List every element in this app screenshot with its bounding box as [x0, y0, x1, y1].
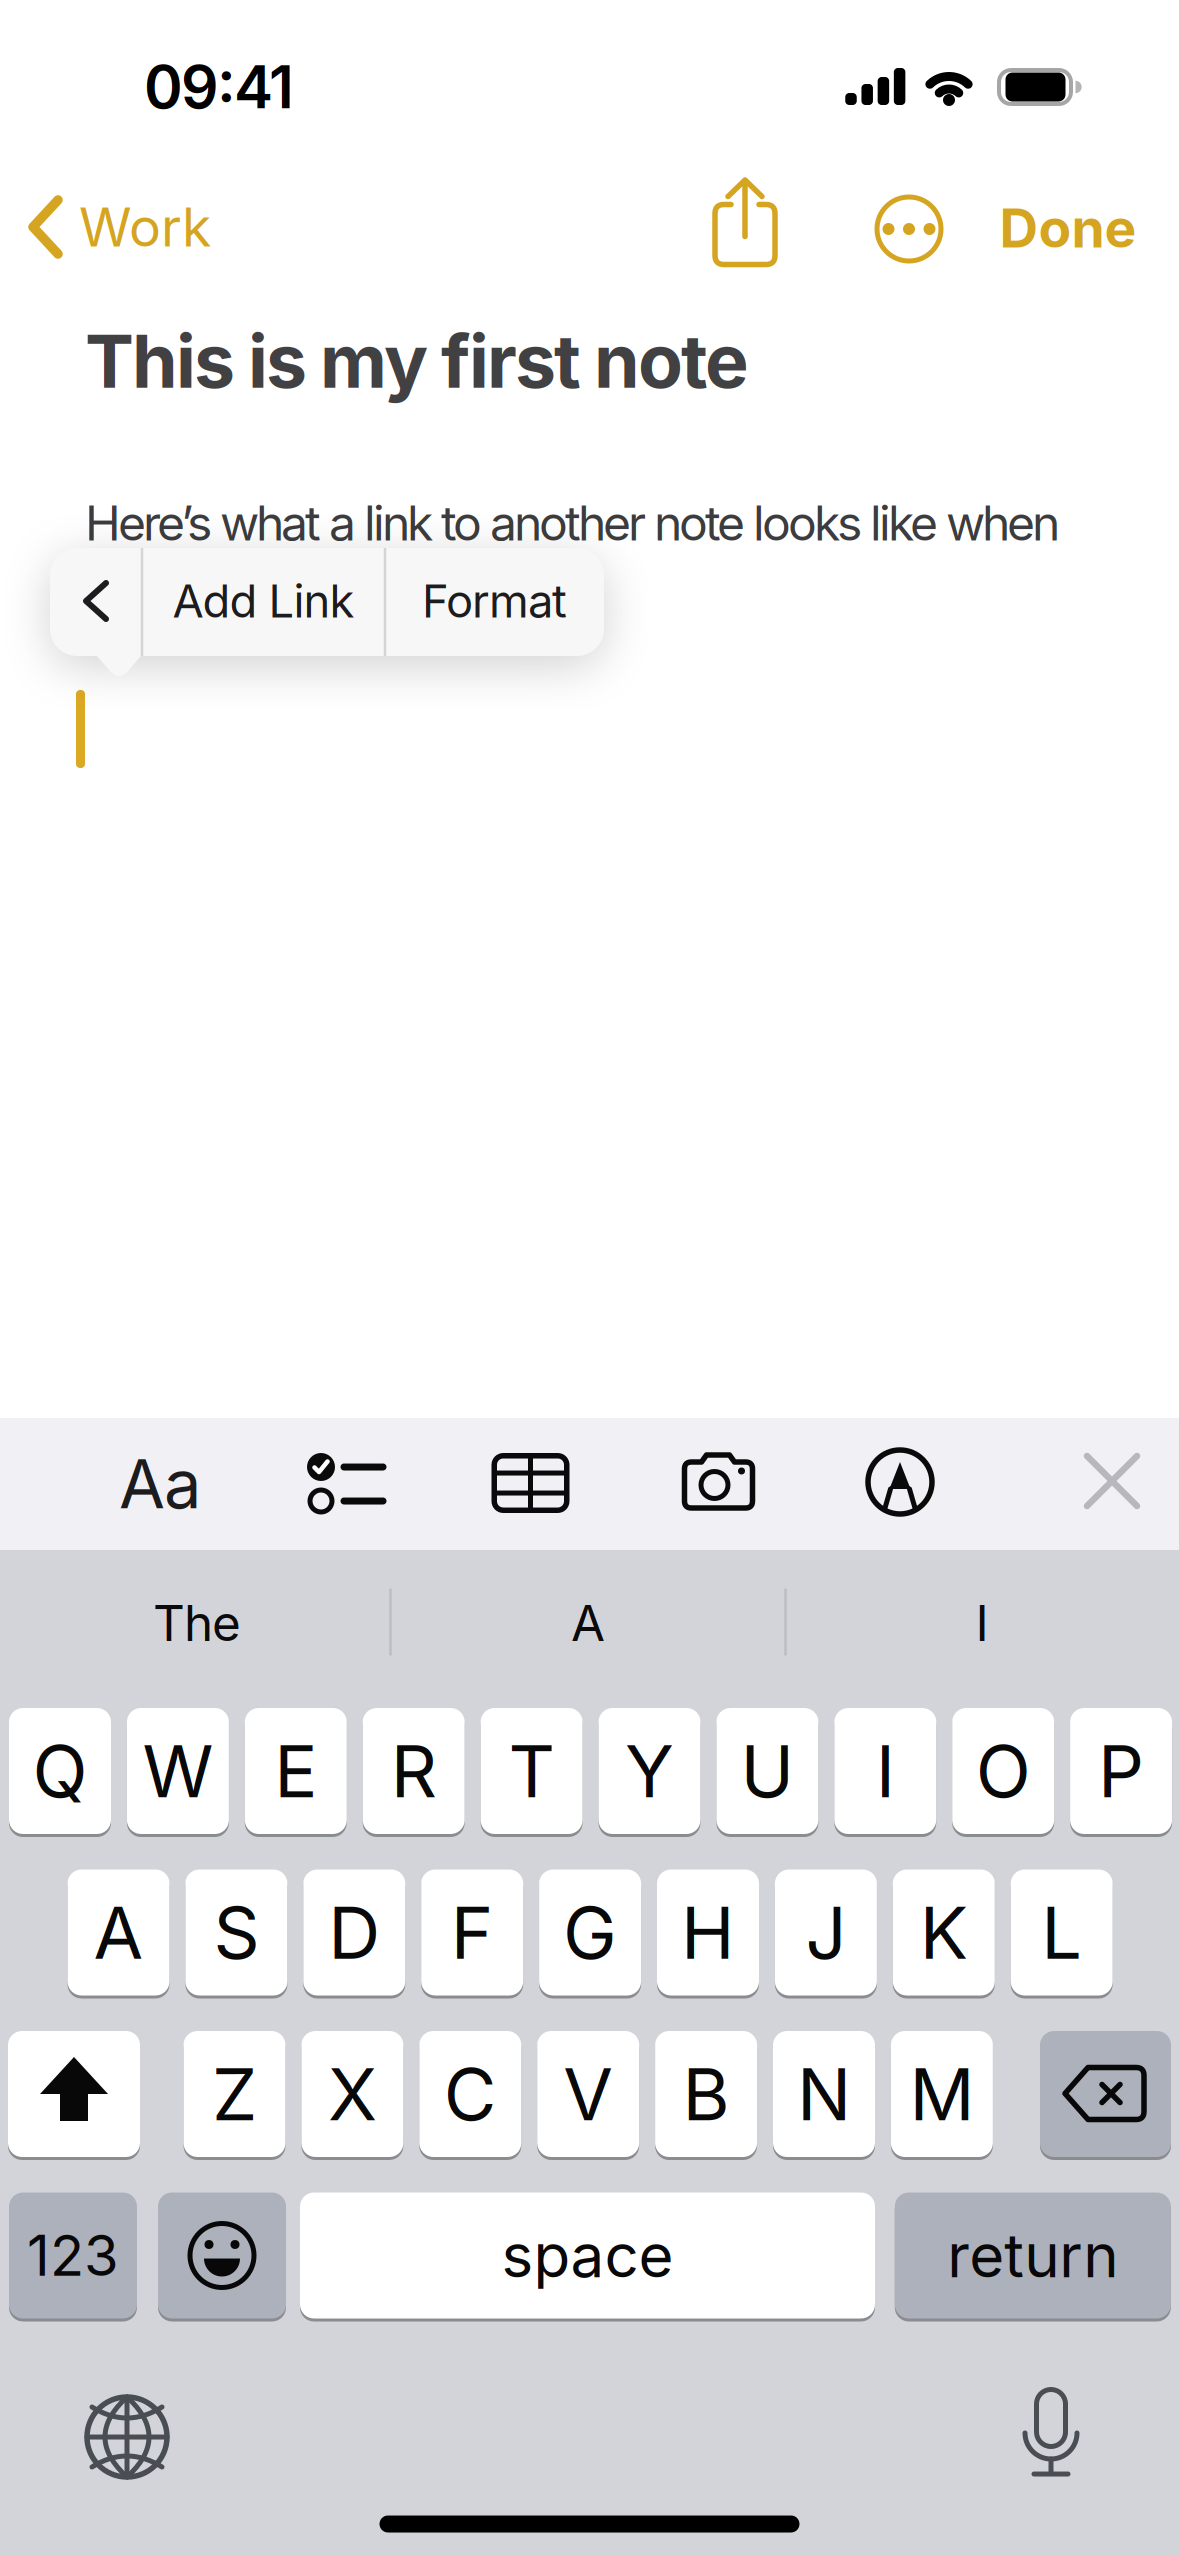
staticText: V — [563, 2050, 613, 2137]
staticText: A — [571, 1593, 605, 1653]
staticText: W — [142, 1727, 213, 1814]
button[interactable] — [1077, 1446, 1147, 1516]
staticText: 123 — [27, 2222, 119, 2289]
button[interactable]: P — [1070, 1708, 1172, 1837]
staticText: L — [1041, 1889, 1082, 1976]
staticText: U — [740, 1727, 794, 1814]
button[interactable]: Y — [598, 1708, 700, 1837]
staticText: Add Link — [172, 574, 354, 628]
button[interactable] — [681, 1453, 755, 1511]
button[interactable]: Done — [978, 193, 1158, 263]
button[interactable]: Aa — [105, 1429, 215, 1539]
staticText: return — [947, 2219, 1118, 2292]
button[interactable]: return — [895, 2192, 1171, 2321]
button[interactable]: I — [797, 1568, 1167, 1678]
staticText: J — [805, 1889, 846, 1976]
button[interactable] — [8, 2031, 140, 2160]
staticText: Work — [79, 195, 211, 259]
button[interactable]: space — [300, 2192, 875, 2321]
staticText: H — [681, 1889, 735, 1976]
button[interactable]: Add Link — [142, 547, 385, 655]
button[interactable]: E — [245, 1708, 347, 1837]
button[interactable]: C — [419, 2031, 521, 2160]
button[interactable]: U — [716, 1708, 818, 1837]
button[interactable]: W — [127, 1708, 229, 1837]
staticText: E — [274, 1727, 317, 1814]
button[interactable]: L — [1011, 1869, 1113, 1998]
button[interactable] — [996, 2382, 1106, 2492]
staticText: K — [920, 1889, 968, 1976]
staticText: Done — [999, 196, 1136, 260]
button[interactable] — [1040, 2031, 1171, 2160]
staticText: R — [391, 1727, 437, 1814]
staticText: I — [876, 1727, 895, 1814]
button[interactable]: J — [775, 1869, 877, 1998]
button[interactable]: Z — [183, 2031, 285, 2160]
button[interactable]: Format — [385, 547, 604, 655]
button[interactable]: Q — [9, 1708, 111, 1837]
staticText: T — [509, 1727, 555, 1814]
staticText: O — [976, 1727, 1031, 1814]
button[interactable] — [705, 178, 785, 273]
staticText: P — [1098, 1727, 1144, 1814]
staticText: D — [328, 1889, 380, 1976]
button[interactable] — [50, 565, 142, 637]
button[interactable] — [72, 2382, 182, 2492]
staticText: I — [975, 1593, 988, 1653]
staticText: F — [451, 1889, 494, 1976]
staticText: G — [563, 1889, 617, 1976]
staticText: A — [93, 1889, 143, 1976]
button[interactable]: M — [891, 2031, 993, 2160]
button[interactable]: The — [12, 1568, 382, 1678]
button[interactable] — [158, 2192, 286, 2321]
staticText: Format — [422, 574, 567, 628]
button[interactable] — [865, 1447, 935, 1517]
button[interactable]: D — [303, 1869, 405, 1998]
button[interactable]: A — [67, 1869, 169, 1998]
staticText: Aa — [119, 1444, 201, 1524]
staticText: Z — [212, 2050, 257, 2137]
button[interactable]: S — [185, 1869, 287, 1998]
button[interactable] — [491, 1453, 569, 1513]
staticText: B — [683, 2050, 730, 2137]
staticText: Here’s what a link to another note looks… — [85, 494, 1060, 552]
button[interactable]: H — [657, 1869, 759, 1998]
button[interactable]: N — [773, 2031, 875, 2160]
button[interactable]: R — [363, 1708, 465, 1837]
staticText: 09:41 — [144, 51, 294, 122]
button[interactable]: G — [539, 1869, 641, 1998]
button[interactable]: T — [481, 1708, 583, 1837]
button[interactable]: O — [952, 1708, 1054, 1837]
staticText: S — [213, 1889, 259, 1976]
button[interactable]: V — [537, 2031, 639, 2160]
staticText: This is my first note — [85, 317, 749, 405]
staticText: N — [797, 2050, 851, 2137]
staticText: M — [909, 2050, 974, 2137]
staticText: C — [444, 2050, 497, 2137]
button[interactable]: I — [834, 1708, 936, 1837]
staticText: The — [153, 1593, 241, 1653]
button[interactable]: F — [421, 1869, 523, 1998]
staticText: X — [328, 2050, 377, 2137]
button[interactable] — [869, 189, 949, 269]
button[interactable]: K — [893, 1869, 995, 1998]
button[interactable]: B — [655, 2031, 757, 2160]
button[interactable]: 123 — [9, 2192, 137, 2321]
staticText: Y — [625, 1727, 674, 1814]
button[interactable]: Work — [25, 192, 210, 262]
button[interactable] — [306, 1452, 384, 1516]
button[interactable]: X — [301, 2031, 403, 2160]
button[interactable]: A — [403, 1568, 773, 1678]
staticText: Q — [32, 1727, 87, 1814]
staticText: space — [501, 2219, 673, 2292]
